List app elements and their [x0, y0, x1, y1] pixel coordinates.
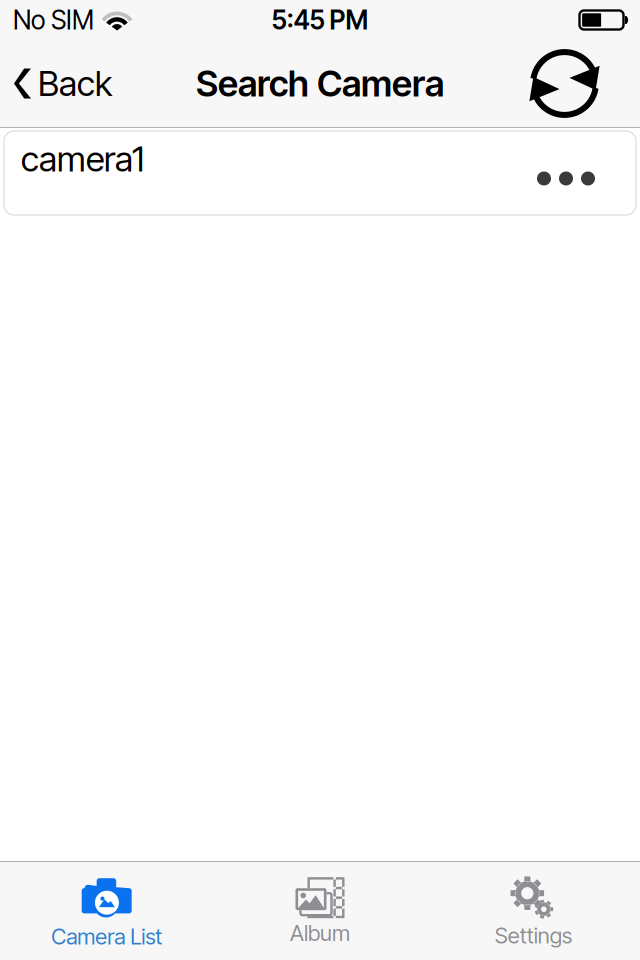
staticText: Album: [290, 920, 350, 946]
button[interactable]: Back: [0, 48, 122, 118]
button[interactable]: Camera List: [0, 865, 213, 957]
staticText: camera1: [21, 138, 144, 180]
button[interactable]: Settings: [427, 866, 640, 956]
staticText: Settings: [495, 922, 572, 949]
staticText: Back: [38, 62, 112, 104]
staticText: 5:45 PM: [271, 4, 368, 36]
staticText: Camera List: [51, 923, 162, 950]
button[interactable]: Refresh: [518, 47, 640, 120]
staticText: Search Camera: [196, 62, 444, 105]
button[interactable]: Album: [213, 869, 427, 953]
staticText: No SIM: [13, 4, 94, 36]
button[interactable]: camera1: [4, 131, 636, 215]
